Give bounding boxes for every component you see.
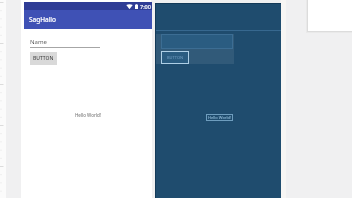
staticText: Name — [30, 38, 47, 46]
button[interactable]: BUTTON — [161, 51, 189, 64]
staticText: BUTTON — [33, 55, 54, 62]
staticText: SagHallo — [29, 15, 56, 24]
staticText: BUTTON — [167, 55, 184, 60]
button[interactable]: BUTTON — [30, 52, 57, 65]
staticText: Hello World! — [208, 115, 232, 120]
staticText: Hello World! — [75, 112, 101, 118]
staticText: 7:00 — [140, 3, 151, 10]
